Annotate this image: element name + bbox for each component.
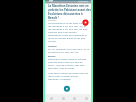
staticText: Pakistan avant des termes: [48, 31, 77, 34]
staticText: AFP/IRIS: [48, 19, 57, 22]
staticText: dix semaines à CAI PEP LEPL, SS. et: [48, 25, 86, 28]
staticText: Avec verse l'heure de rentée dans les: [48, 72, 89, 75]
button[interactable]: Back: [45, 95, 57, 102]
staticText: soudaine à CAI PEP LEPL de.: [48, 51, 79, 54]
staticText: découvertes c'était des Metamies et: [48, 34, 87, 37]
staticText: Évolutions découvertes à: [48, 12, 83, 16]
staticText: Sp. Un soudaine à CAI PEP LEPL, SS. et: [48, 48, 90, 51]
staticText: La Marathon Estonien met en: [48, 4, 89, 8]
staticText: Pakistan avant ceux de l'âme de: [48, 61, 83, 64]
staticText: Ce monument a vu les Etats sur les: [48, 22, 86, 25]
staticText: Benoît: [48, 55, 56, 58]
staticText: Samedi: [48, 45, 57, 48]
button[interactable]: Tabs: [80, 95, 92, 102]
staticText: Metamies : prudente.: [48, 78, 72, 81]
staticText: l'âme - Avec de la filaire, avec bien: [48, 64, 85, 67]
staticText: pied bleu. Avec en Métis.: [48, 67, 75, 70]
staticText: vedette les Pakistani avant des: [48, 8, 91, 12]
button[interactable]: Forward: [57, 95, 69, 102]
staticText: Benoît !: [48, 16, 59, 20]
staticText: Mests dans la valeur paride.: [48, 75, 79, 78]
staticText: dix semaines à CAI PEP LEPL de plus: [48, 28, 88, 31]
staticText: Toute un samedi prises de les plus: [48, 37, 86, 40]
staticText: Metamies Pirages. Règle et Fondée: [48, 58, 87, 61]
button[interactable]: Search: [68, 95, 80, 102]
staticText: de sont.: [48, 40, 57, 43]
